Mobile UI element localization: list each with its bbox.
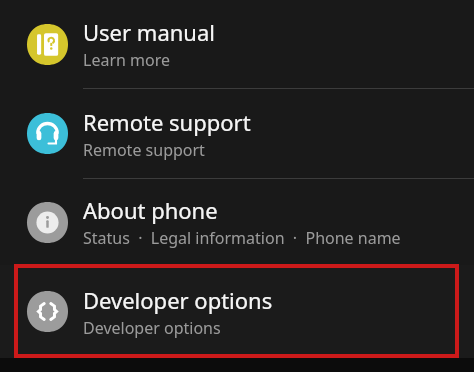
staticText: Learn more <box>83 49 170 71</box>
button[interactable]: Developer options <box>0 265 474 358</box>
button[interactable]: User manual <box>0 0 474 88</box>
button[interactable]: About phone <box>0 179 474 265</box>
staticText: Remote support <box>83 107 251 137</box>
staticText: Status · Legal information · Phone name <box>83 227 401 249</box>
staticText: Remote support <box>83 139 205 161</box>
staticText: User manual <box>83 17 215 47</box>
staticText: Developer options <box>83 285 273 315</box>
button[interactable]: Remote support <box>0 89 474 178</box>
staticText: Developer options <box>83 317 221 339</box>
staticText: About phone <box>83 195 218 225</box>
